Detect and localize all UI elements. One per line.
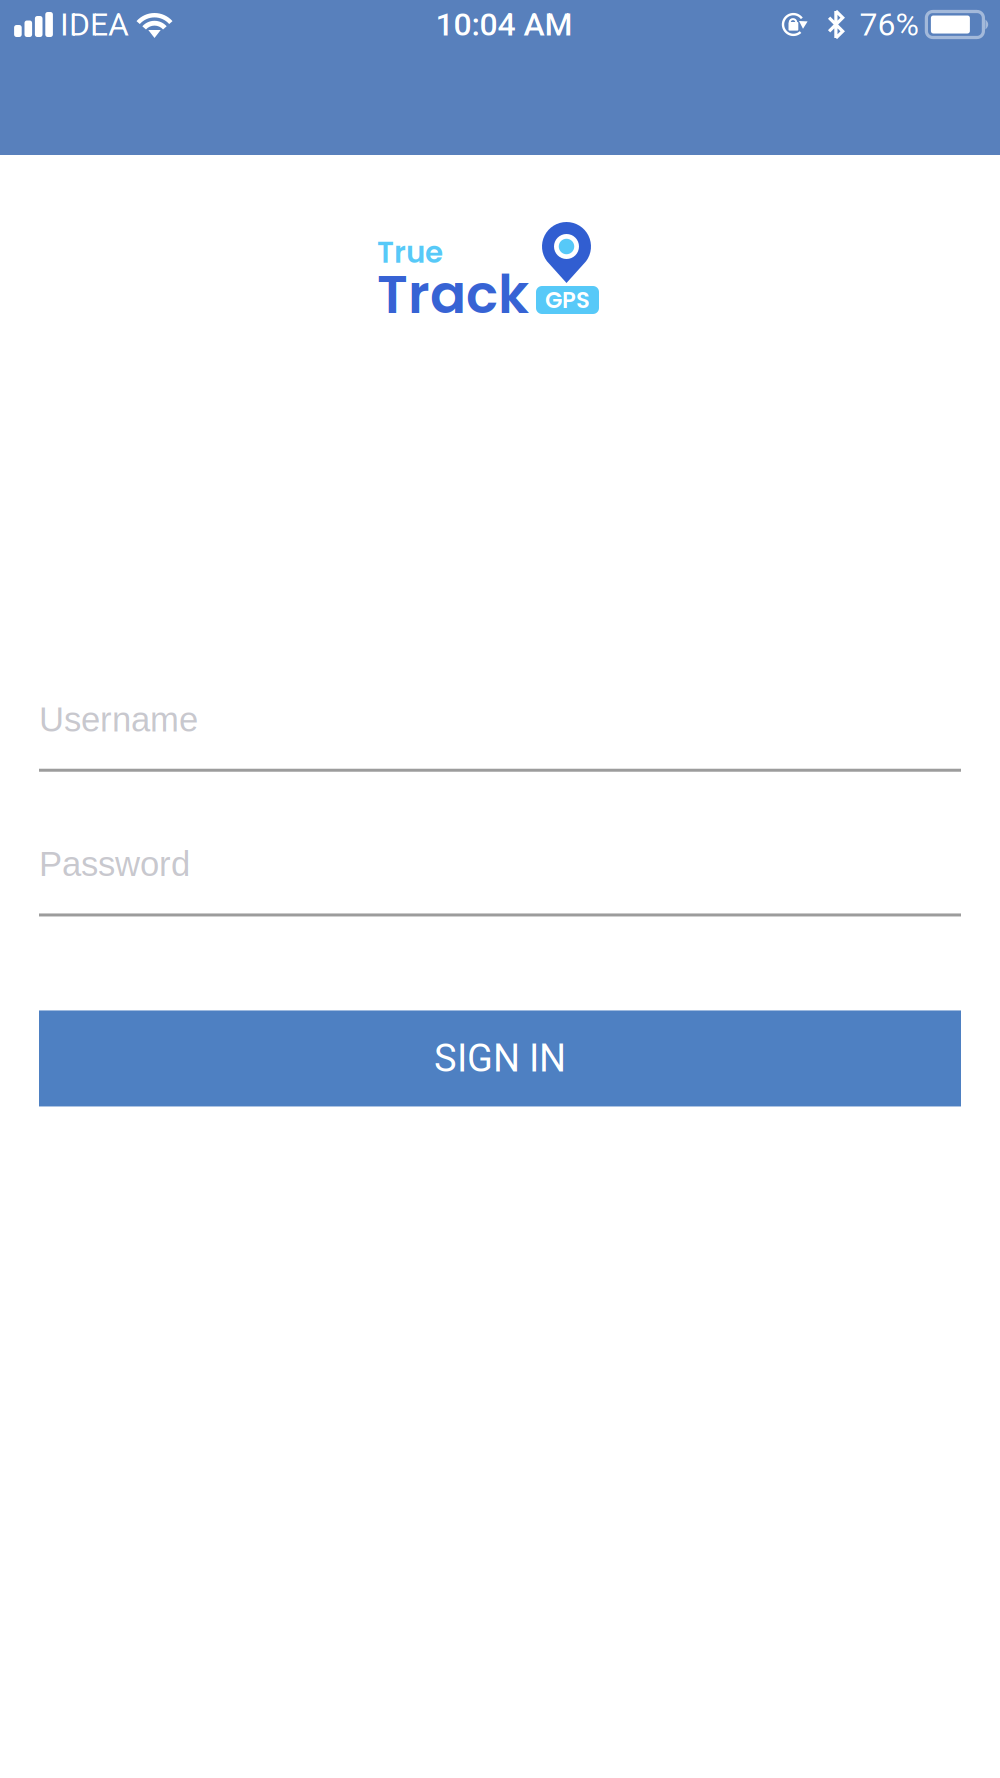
staticText: Username <box>39 700 198 739</box>
staticText: Track <box>377 257 529 332</box>
staticText: True <box>377 232 443 273</box>
staticText: Password <box>39 845 190 883</box>
button[interactable]: Password <box>39 845 961 916</box>
staticText: SIGN IN <box>434 1036 566 1081</box>
staticText: IDEA <box>60 6 129 43</box>
staticText: GPS <box>545 284 590 316</box>
staticText: 10:04 AM <box>435 6 572 43</box>
button[interactable]: Username <box>39 700 961 772</box>
button[interactable]: SIGN IN <box>39 1010 961 1106</box>
staticText: 76% <box>859 6 918 43</box>
